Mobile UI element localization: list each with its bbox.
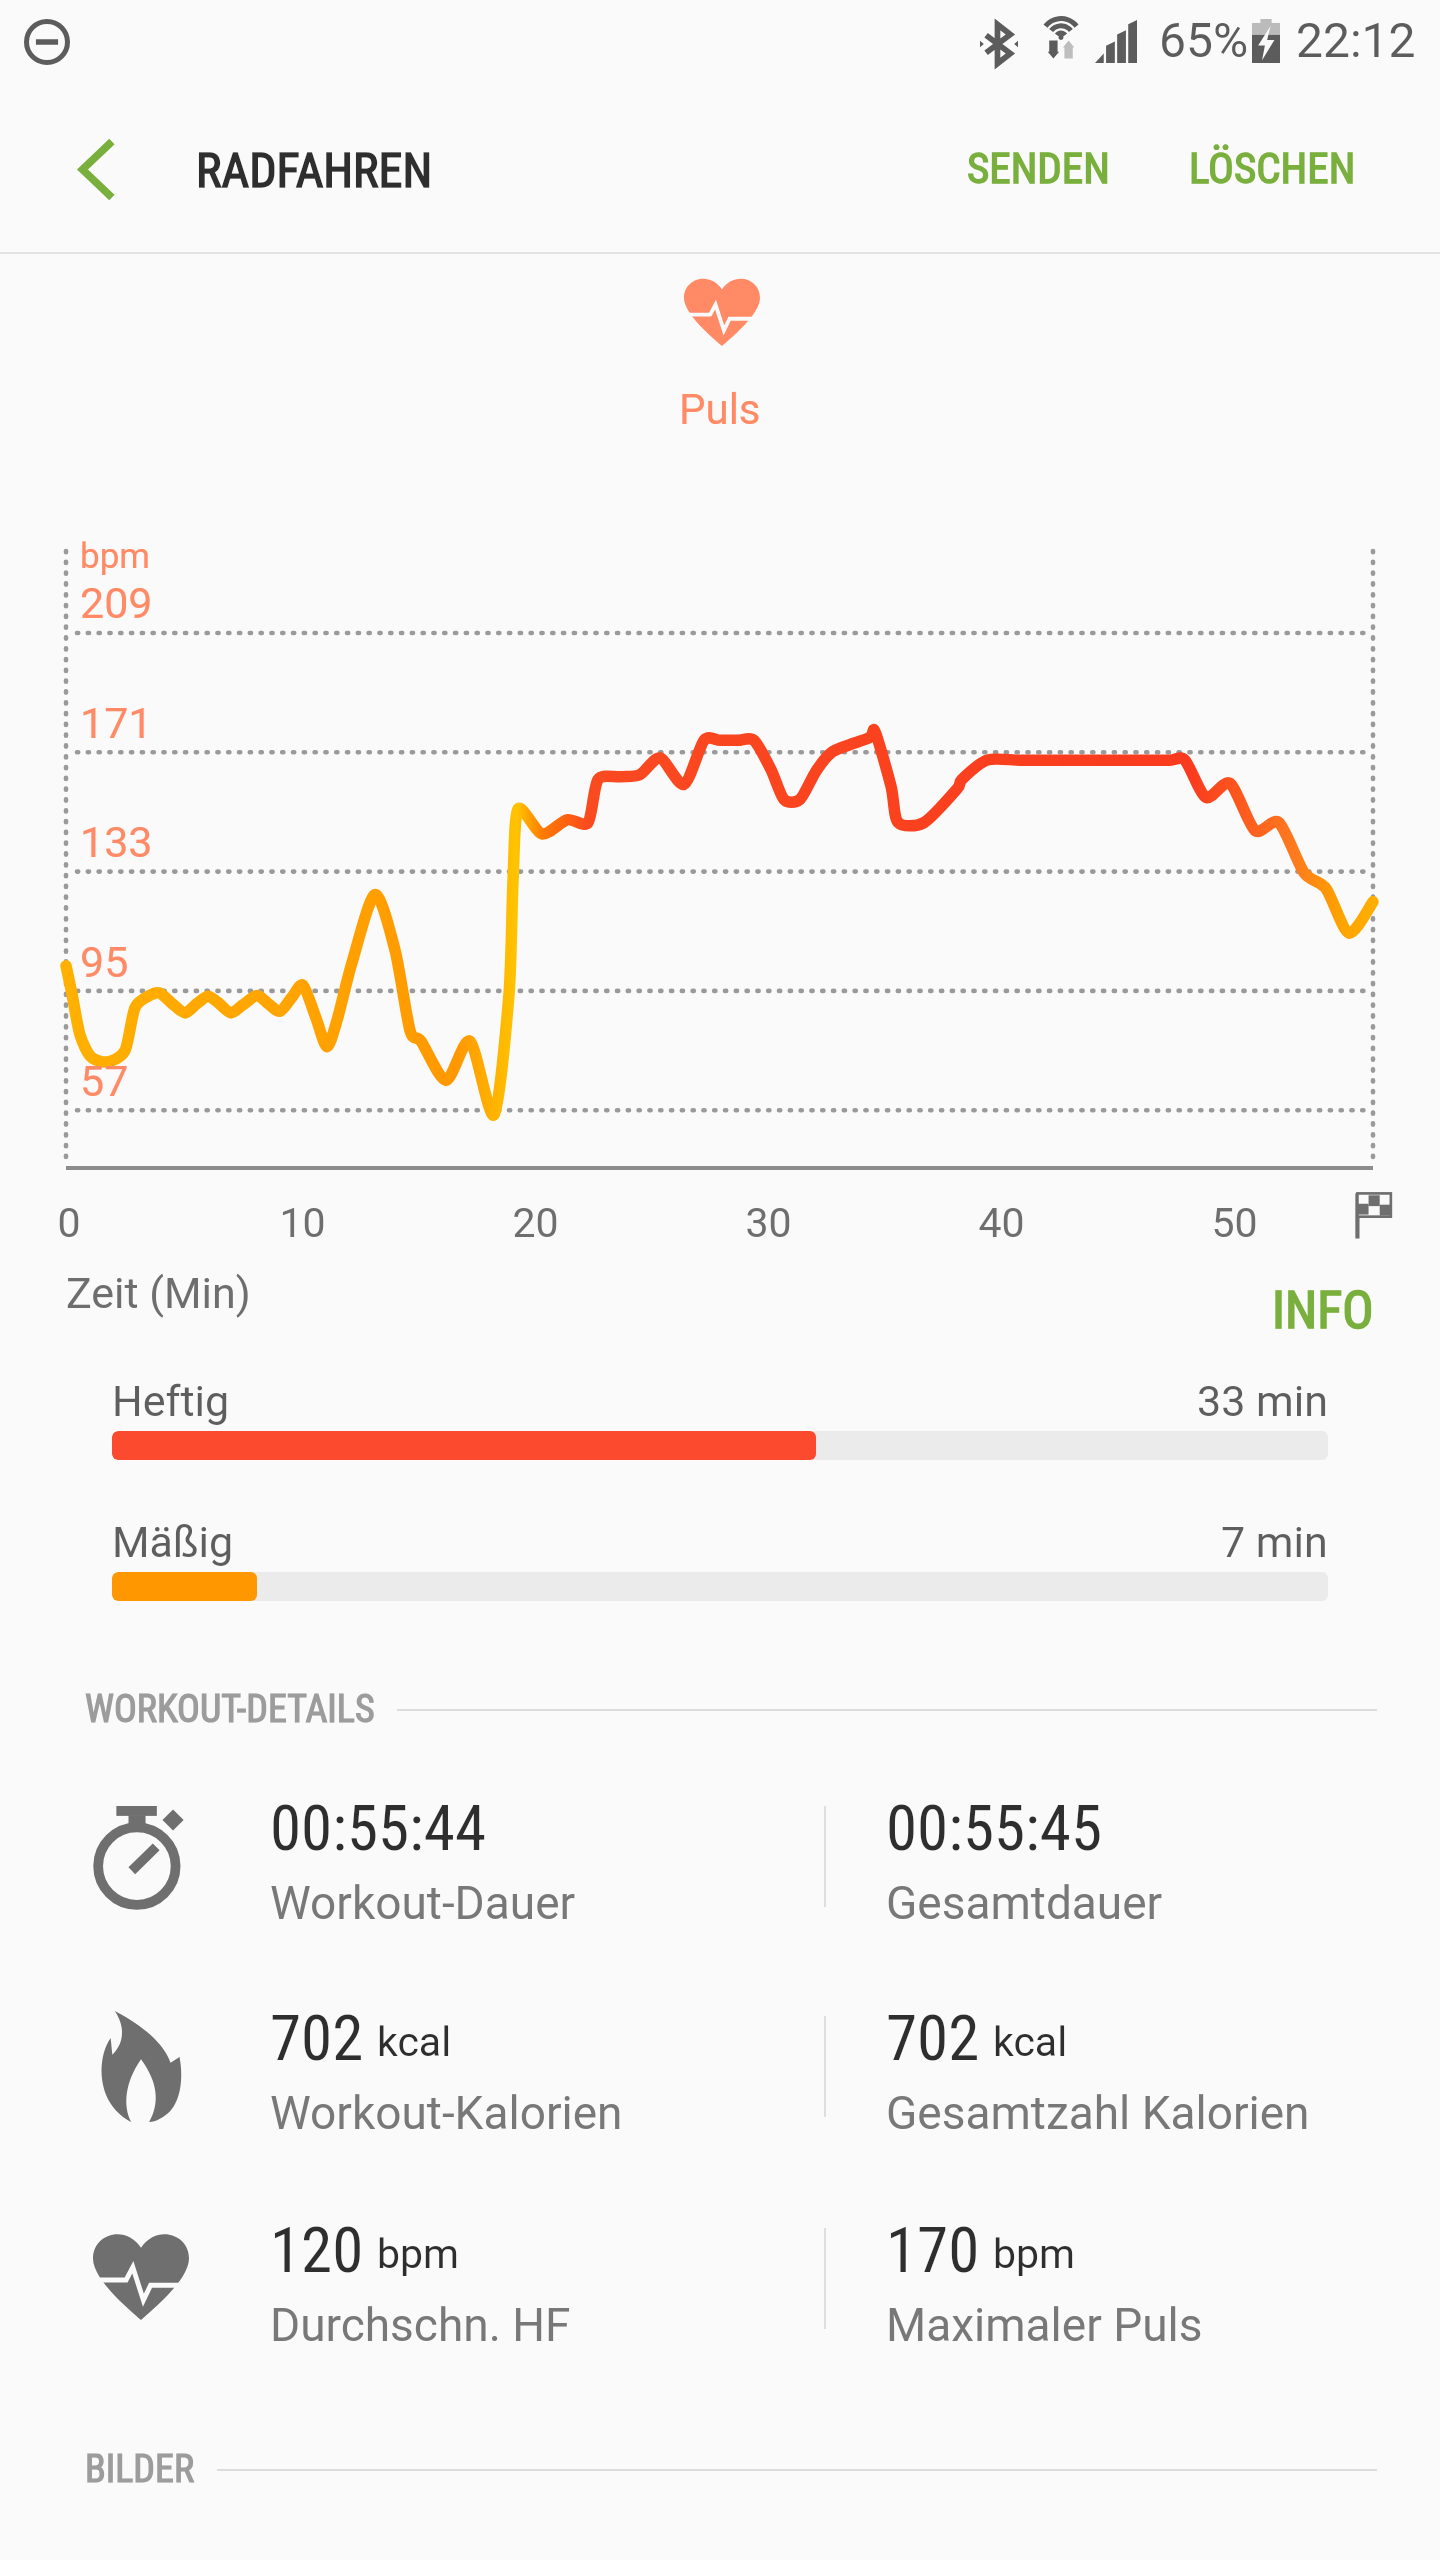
staticText: Durchschn. HF bbox=[270, 2298, 571, 2352]
staticText: INFO bbox=[1272, 1280, 1374, 1341]
staticText: 209 bbox=[80, 578, 153, 628]
staticText: 702 bbox=[886, 2002, 980, 2076]
staticText: WORKOUT-DETAILS bbox=[85, 1687, 375, 1732]
staticText: 40 bbox=[978, 1199, 1025, 1247]
staticText: BILDER bbox=[85, 2447, 195, 2492]
staticText: Mäßig bbox=[112, 1517, 234, 1567]
staticText: kcal bbox=[377, 2018, 452, 2066]
button[interactable]: Back bbox=[50, 114, 140, 224]
staticText: 65% bbox=[1159, 12, 1249, 68]
staticText: bpm bbox=[80, 536, 150, 577]
button[interactable]: INFO bbox=[1228, 1256, 1418, 1365]
staticText: 702 bbox=[270, 2002, 364, 2076]
staticText: bpm bbox=[993, 2230, 1075, 2278]
staticText: 20 bbox=[512, 1199, 559, 1247]
staticText: 57 bbox=[80, 1056, 129, 1106]
staticText: 7 min bbox=[1221, 1517, 1328, 1567]
staticText: 95 bbox=[80, 937, 129, 987]
staticText: 30 bbox=[745, 1199, 792, 1247]
staticText: 33 min bbox=[1197, 1376, 1328, 1426]
staticText: Workout-Kalorien bbox=[270, 2086, 623, 2140]
staticText: LÖSCHEN bbox=[1189, 143, 1356, 193]
staticText: RADFAHREN bbox=[196, 142, 433, 198]
staticText: 00:55:44 bbox=[270, 1792, 487, 1866]
button[interactable]: SENDEN bbox=[943, 102, 1134, 234]
staticText: 10 bbox=[279, 1199, 326, 1247]
staticText: 22:12 bbox=[1296, 12, 1416, 68]
staticText: bpm bbox=[377, 2230, 459, 2278]
staticText: 120 bbox=[270, 2214, 364, 2288]
staticText: 0 bbox=[57, 1199, 81, 1247]
staticText: 133 bbox=[80, 817, 153, 867]
staticText: 00:55:45 bbox=[886, 1792, 1103, 1866]
staticText: Heftig bbox=[112, 1376, 230, 1426]
staticText: 171 bbox=[80, 698, 153, 748]
staticText: Gesamtdauer bbox=[886, 1876, 1163, 1930]
staticText: Maximaler Puls bbox=[886, 2298, 1203, 2352]
staticText: Workout-Dauer bbox=[270, 1876, 576, 1930]
staticText: Zeit (Min) bbox=[66, 1268, 251, 1318]
staticText: 50 bbox=[1211, 1199, 1258, 1247]
button[interactable]: LÖSCHEN bbox=[1165, 102, 1380, 234]
staticText: Puls bbox=[679, 385, 761, 434]
staticText: Gesamtzahl Kalorien bbox=[886, 2086, 1310, 2140]
staticText: kcal bbox=[993, 2018, 1068, 2066]
staticText: SENDEN bbox=[967, 143, 1110, 193]
staticText: 170 bbox=[886, 2214, 980, 2288]
